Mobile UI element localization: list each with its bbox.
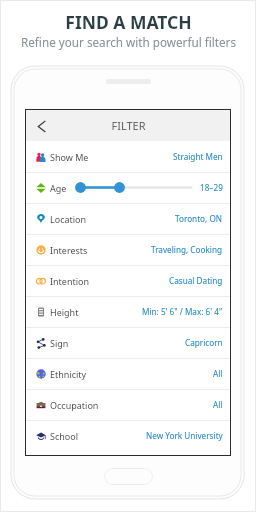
button[interactable]: Age xyxy=(25,172,231,203)
staticText: Toronto, ON xyxy=(175,213,223,224)
staticText: All xyxy=(213,368,223,379)
button[interactable]: Sign xyxy=(25,327,231,358)
staticText: Interests xyxy=(50,244,88,256)
button[interactable]: Home xyxy=(104,468,153,485)
button[interactable]: Occupation xyxy=(25,389,231,420)
staticText: FIND A MATCH xyxy=(65,10,192,34)
staticText: Height xyxy=(50,306,79,318)
staticText: Casual Dating xyxy=(169,275,223,286)
staticText: Traveling, Cooking xyxy=(151,244,223,255)
button[interactable]: School xyxy=(25,420,231,451)
staticText: Sign xyxy=(50,337,69,349)
staticText: New York University xyxy=(146,430,223,441)
staticText: Refine your search with powerful filters xyxy=(21,34,236,50)
staticText: 18–29 xyxy=(200,182,223,193)
staticText: FILTER xyxy=(111,118,146,133)
staticText: All xyxy=(213,399,223,410)
button[interactable]: Intention xyxy=(25,265,231,296)
button[interactable]: Ethnicity xyxy=(25,358,231,389)
staticText: Straight Men xyxy=(173,151,223,162)
staticText: Intention xyxy=(50,275,90,287)
button[interactable]: Back xyxy=(27,112,55,140)
staticText: Min: 5' 6" / Max: 6' 4" xyxy=(142,306,223,317)
staticText: Age xyxy=(50,182,67,194)
staticText: Capricorn xyxy=(185,337,223,348)
staticText: School xyxy=(50,430,79,442)
button[interactable]: Show Me xyxy=(25,141,231,172)
staticText: Location xyxy=(50,213,87,225)
button[interactable]: Location xyxy=(25,203,231,234)
button[interactable]: Interests xyxy=(25,234,231,265)
staticText: Show Me xyxy=(50,151,89,163)
button[interactable]: Height xyxy=(25,296,231,327)
staticText: Occupation xyxy=(50,399,99,411)
staticText: Ethnicity xyxy=(50,368,87,380)
